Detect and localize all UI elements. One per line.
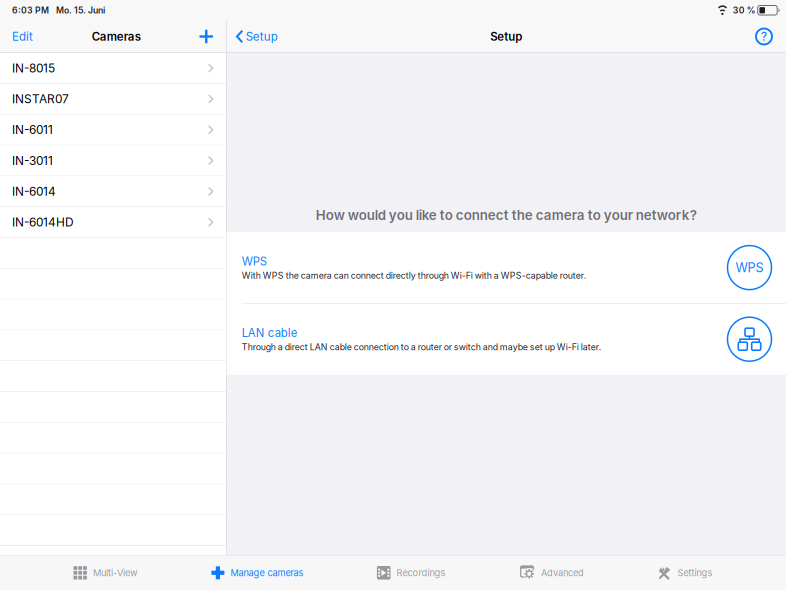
staticText: 6:03 PM — [12, 5, 49, 15]
button[interactable]: Help — [756, 25, 772, 47]
staticText: Edit — [12, 29, 33, 43]
button[interactable]: INSTAR07 — [0, 84, 226, 115]
staticText: Setup — [490, 30, 522, 43]
button[interactable]: IN-6014 — [0, 176, 226, 207]
staticText: Manage cameras — [230, 567, 303, 578]
button[interactable]: IN-3011 — [0, 145, 226, 176]
button[interactable]: Add camera — [196, 25, 216, 48]
staticText: Mo. 15. Juni — [56, 5, 105, 15]
staticText: Through a direct LAN cable connection to… — [242, 342, 602, 352]
button[interactable]: Setup — [236, 25, 278, 47]
button[interactable]: IN-6014HD — [0, 207, 226, 238]
staticText: IN-3011 — [12, 153, 53, 168]
staticText: Advanced — [541, 567, 584, 578]
staticText: IN-6011 — [12, 123, 53, 137]
staticText: Multi-View — [93, 567, 138, 578]
staticText: Cameras — [92, 30, 141, 43]
button[interactable]: IN-8015 — [0, 53, 226, 84]
staticText: IN-8015 — [12, 61, 55, 75]
staticText: With WPS the camera can connect directly… — [242, 270, 587, 281]
button[interactable]: Multi-View — [73, 555, 138, 590]
button[interactable]: WPS — [227, 232, 786, 303]
button[interactable]: Advanced — [519, 555, 584, 590]
staticText: INSTAR07 — [12, 92, 69, 106]
staticText: IN-6014 — [12, 184, 56, 199]
staticText: Recordings — [396, 567, 445, 578]
staticText: LAN cable — [242, 326, 298, 340]
staticText: ? — [761, 30, 767, 43]
button[interactable]: LAN cable — [227, 304, 786, 375]
staticText: 30 % — [733, 5, 756, 15]
button[interactable]: Settings — [657, 555, 712, 590]
button[interactable]: IN-6011 — [0, 115, 226, 145]
staticText: WPS — [735, 260, 763, 275]
button[interactable]: Recordings — [377, 555, 445, 590]
staticText: IN-6014HD — [12, 215, 74, 229]
staticText: Settings — [677, 567, 712, 578]
button[interactable]: Manage cameras — [211, 555, 303, 590]
staticText: WPS — [242, 254, 267, 268]
staticText: Setup — [246, 29, 278, 43]
button[interactable]: Edit — [9, 24, 36, 48]
staticText: How would you like to connect the camera… — [316, 207, 697, 223]
